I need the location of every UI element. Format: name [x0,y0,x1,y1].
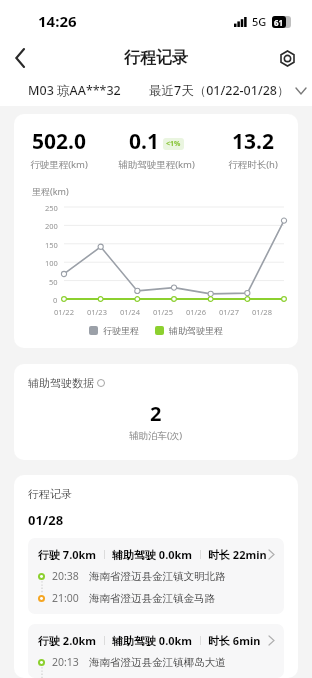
staticText: 01/28 [252,307,272,317]
staticText: 14:26 [38,11,77,31]
staticText: 0.1 [129,127,159,156]
button[interactable]: 行驶 2.0km [28,624,284,678]
staticText: 辅助驾驶 0.0km [112,547,193,562]
staticText: 行程记录 [28,487,72,501]
staticText: 01/27 [219,307,239,317]
staticText: 21:00 [52,591,79,605]
staticText: 海南省澄迈县金江镇金马路 [89,592,215,605]
staticText: 01/23 [87,307,107,317]
button[interactable]: Back [0,42,40,74]
staticText: 海南省澄迈县金江镇文明北路 [89,570,226,583]
staticText: 辅助驾驶数据 [28,376,94,390]
staticText: 行驶里程 [103,325,139,336]
staticText: 辅助驾驶里程 [169,325,223,336]
button[interactable]: 辅助驾驶数据 [28,376,105,390]
staticText: 辅助泊车(次) [129,429,183,442]
staticText: 行驶里程(km) [30,158,88,171]
staticText: 01/28 [28,511,64,529]
staticText: 13.2 [232,127,274,156]
staticText: 行程时长(h) [228,158,278,171]
staticText: 01/22 [54,307,74,317]
staticText: 行驶 7.0km [38,547,97,562]
button[interactable]: M03 琼AA***32 [28,82,121,99]
staticText: 行驶 2.0km [38,633,97,648]
staticText: 辅助驾驶里程(km) [118,158,195,171]
staticText: 01/24 [120,307,140,317]
staticText: M03 琼AA***32 [28,82,121,99]
staticText: 20:38 [52,569,79,583]
button[interactable]: 行驶 7.0km [28,538,284,614]
staticText: 行程记录 [124,48,188,68]
staticText: 01/26 [186,307,206,317]
staticText: 250 [45,203,58,211]
staticText: 辅助驾驶 0.0km [112,633,193,648]
staticText: 5G [252,14,267,29]
staticText: 20:13 [52,655,79,669]
staticText: 200 [45,221,58,229]
staticText: 时长 6min [208,633,261,648]
staticText: 里程(km) [32,185,69,197]
button[interactable]: 最近7天（01/22-01/28） [149,82,306,99]
staticText: 100 [45,258,58,266]
staticText: 502.0 [32,127,86,156]
staticText: 150 [45,240,58,248]
button[interactable]: Settings [270,42,304,74]
staticText: 0 [53,295,58,303]
staticText: 2 [150,400,162,427]
staticText: 01/25 [153,307,173,317]
staticText: 61 [274,17,284,28]
staticText: 最近7天（01/22-01/28） [149,82,290,99]
staticText: 50 [49,277,58,285]
staticText: <1% [166,139,181,149]
staticText: 时长 22min [208,547,267,562]
staticText: 海南省澄迈县金江镇椰岛大道 [89,656,226,669]
